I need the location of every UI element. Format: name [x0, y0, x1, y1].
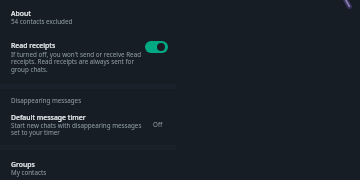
- staticText: Read receipts: [11, 41, 56, 50]
- staticText: Default message timer: [11, 113, 86, 122]
- button[interactable]: Read receipts toggle: [145, 41, 168, 53]
- button[interactable]: Read receipts: [0, 36, 176, 80]
- button[interactable]: About: [0, 4, 176, 30]
- staticText: About: [11, 9, 31, 18]
- staticText: Groups: [11, 160, 35, 169]
- button[interactable]: Groups: [0, 155, 176, 180]
- staticText: Off: [153, 120, 163, 129]
- staticText: Start new chats with disappearing messag…: [11, 121, 145, 137]
- staticText: If turned off, you won't send or receive…: [11, 50, 145, 74]
- staticText: 54 contacts excluded: [11, 17, 73, 26]
- staticText: Disappearing messages: [11, 96, 82, 105]
- button[interactable]: Default message timer: [0, 108, 176, 142]
- staticText: My contacts: [11, 168, 47, 177]
